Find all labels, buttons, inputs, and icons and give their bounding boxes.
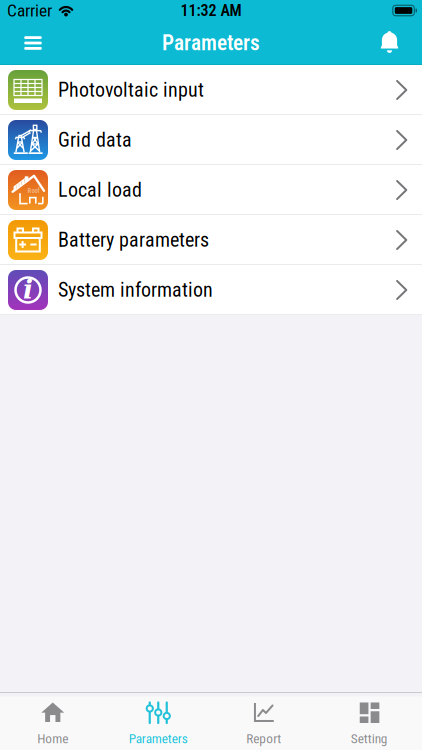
button[interactable] xyxy=(377,30,406,56)
staticText: Battery parameters xyxy=(58,229,209,251)
staticText: Photovoltaic input xyxy=(58,79,204,101)
button[interactable] xyxy=(16,26,50,60)
staticText: Grid data xyxy=(58,129,132,151)
staticText: Home xyxy=(37,731,68,746)
button[interactable]: Report xyxy=(211,700,316,746)
staticText: Parameters xyxy=(162,31,260,55)
button[interactable]: Parameters xyxy=(105,700,211,746)
staticText: Parameters xyxy=(129,731,188,746)
staticText: Report xyxy=(246,731,281,746)
staticText: Carrier xyxy=(7,1,52,20)
staticText: Roof xyxy=(27,187,39,195)
button[interactable]: Photovoltaic input xyxy=(0,65,422,115)
button[interactable]: Roof xyxy=(0,165,422,215)
staticText: Local load xyxy=(58,179,142,201)
staticText: System information xyxy=(58,279,213,301)
button[interactable]: i xyxy=(0,265,422,315)
staticText: i xyxy=(23,273,33,305)
staticText: Setting xyxy=(351,731,388,746)
button[interactable]: Grid data xyxy=(0,115,422,165)
button[interactable]: Battery parameters xyxy=(0,215,422,265)
staticText: 11:32 AM xyxy=(180,1,241,20)
button[interactable]: Home xyxy=(0,700,105,746)
button[interactable]: Setting xyxy=(316,700,422,746)
